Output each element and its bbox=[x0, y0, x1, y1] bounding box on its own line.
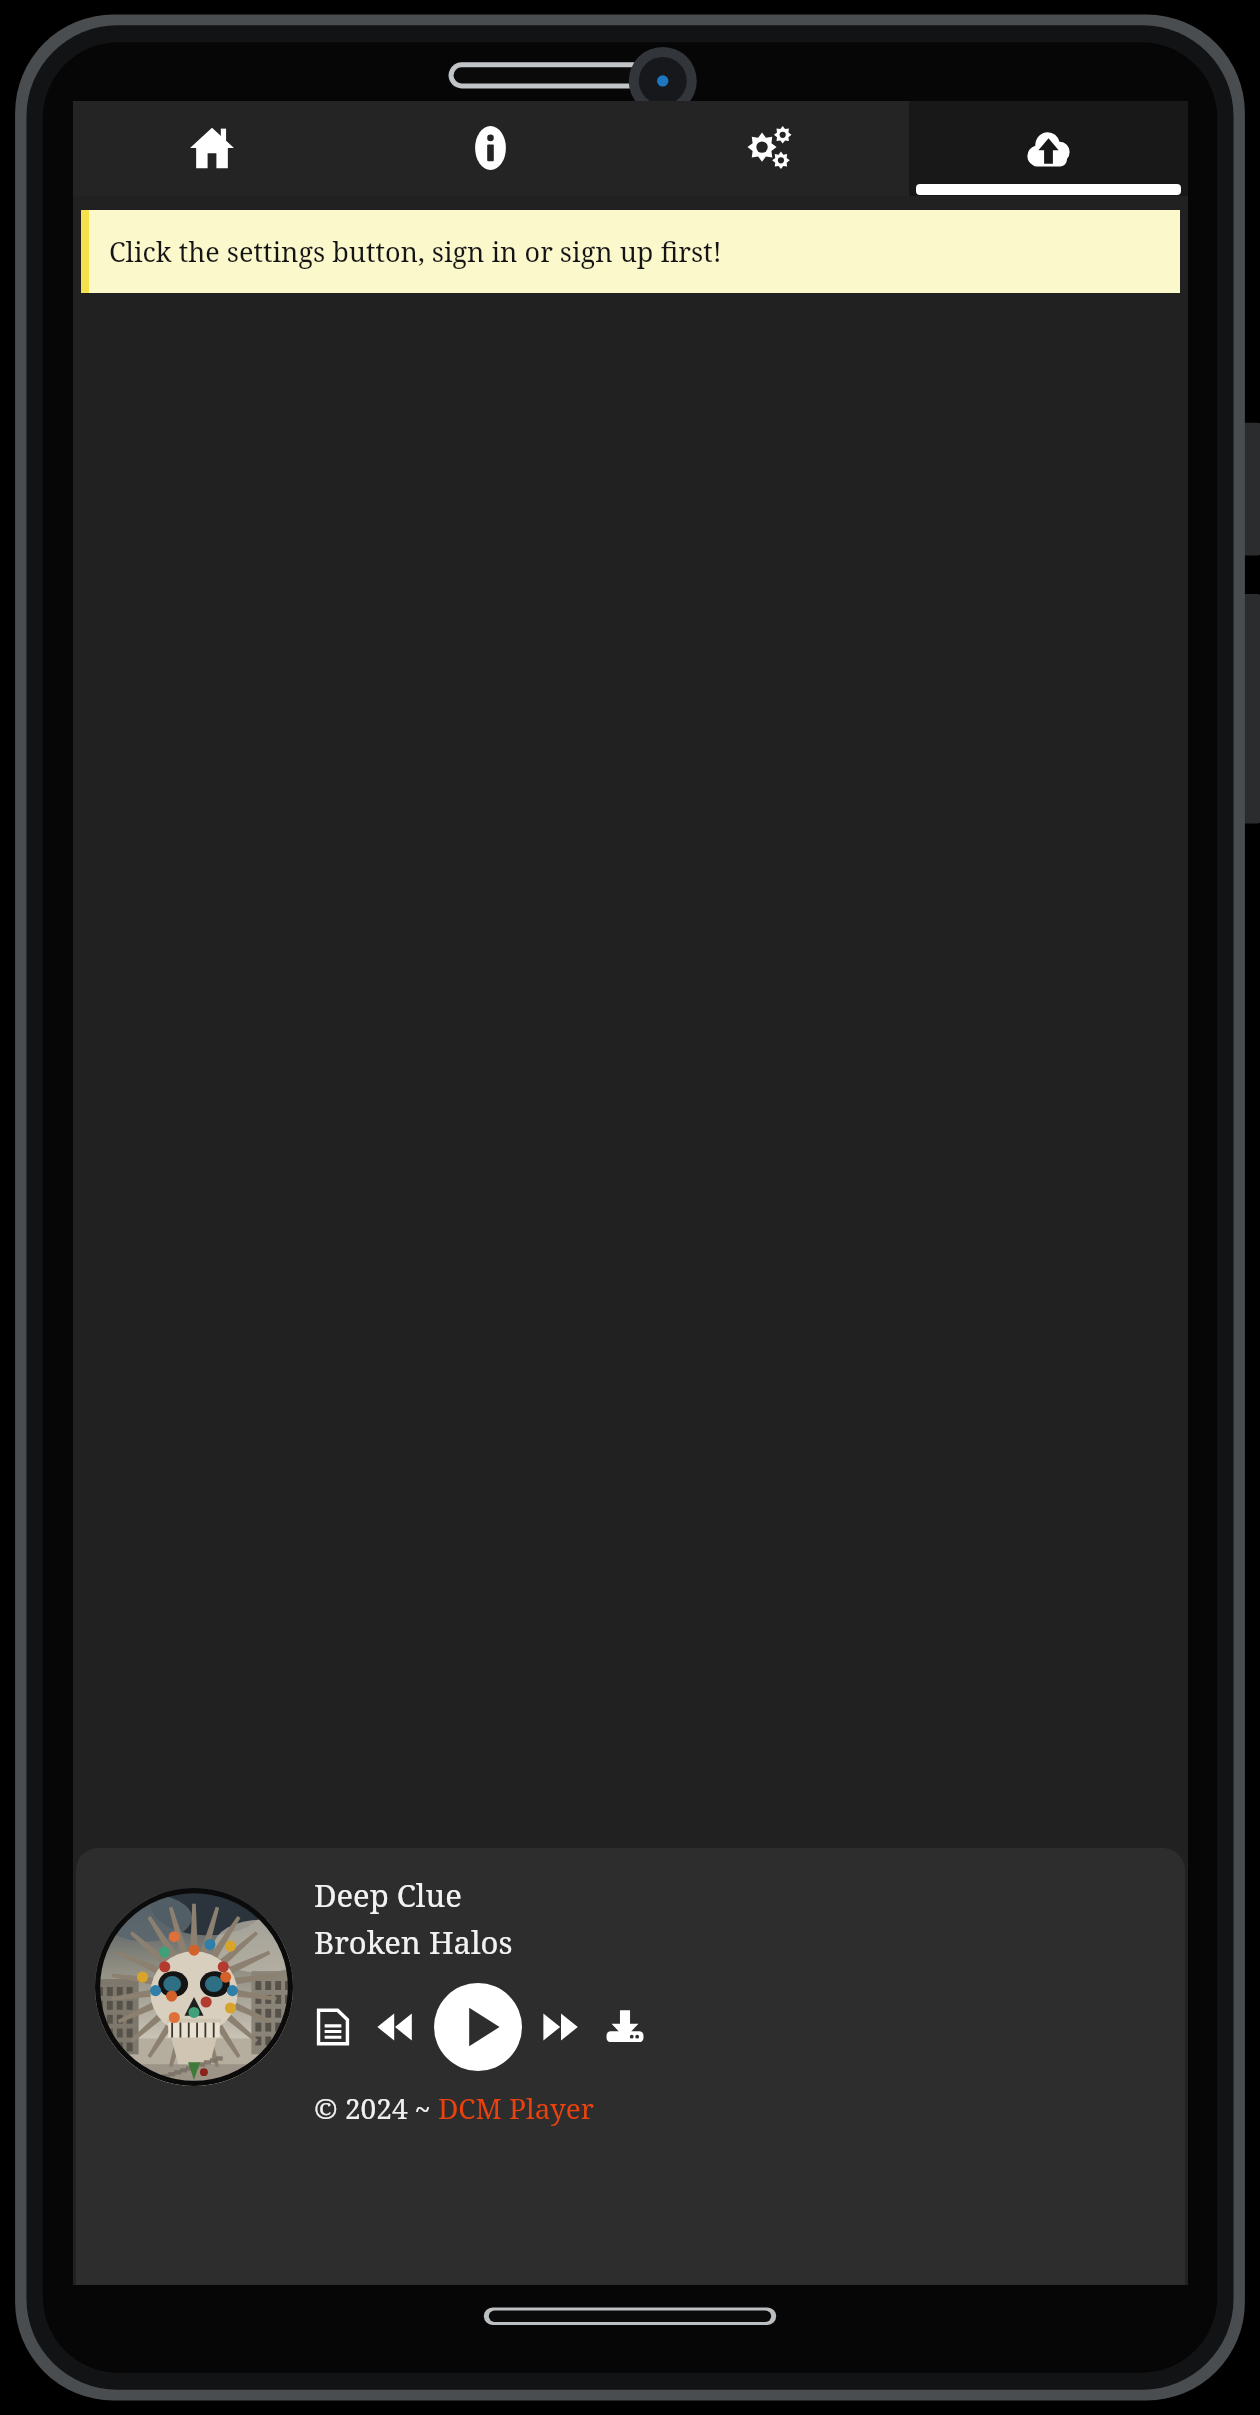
staticText: Deep Clue bbox=[314, 1874, 462, 1916]
button[interactable]: Lyrics bbox=[314, 2008, 352, 2046]
button[interactable]: Info bbox=[351, 101, 630, 196]
button[interactable]: Settings bbox=[630, 101, 909, 196]
staticText: Click the settings button, sign in or si… bbox=[109, 233, 722, 270]
button[interactable]: Previous bbox=[374, 2006, 416, 2048]
button[interactable]: Download bbox=[604, 2006, 646, 2048]
staticText: Broken Halos bbox=[314, 1921, 513, 1963]
button[interactable]: Home bbox=[73, 101, 351, 196]
button[interactable]: Play bbox=[434, 1983, 522, 2071]
staticText: DCM Player bbox=[438, 2089, 594, 2127]
staticText: © 2024 ~ bbox=[314, 2089, 438, 2127]
button[interactable]: Album art bbox=[95, 1888, 293, 2086]
button[interactable]: Upload bbox=[909, 101, 1188, 196]
button[interactable]: Next bbox=[540, 2006, 582, 2048]
